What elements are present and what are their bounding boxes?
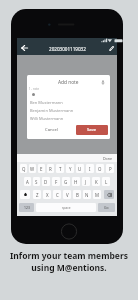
button[interactable]: J [82,177,90,186]
button[interactable]: Cancel [38,125,65,135]
staticText: space [62,206,71,210]
button[interactable]: R [47,164,54,173]
button[interactable]: Ben Mustermann [27,98,110,106]
button[interactable]: B [73,190,81,199]
staticText: E [40,166,43,172]
button[interactable]: A [24,177,31,186]
button[interactable]: Save [76,125,108,135]
button[interactable]: K [92,177,100,186]
staticText: W [30,166,35,172]
staticText: H [74,179,78,185]
button[interactable]: V [63,190,71,199]
staticText: Cancel [45,127,59,133]
staticText: S [35,179,38,185]
button[interactable]: Numbers [19,203,34,212]
button[interactable]: I [86,164,94,173]
staticText: F [55,179,58,185]
button[interactable]: M [93,190,101,199]
staticText: C [56,192,59,198]
staticText: Z [36,192,39,198]
button[interactable]: O [96,164,104,173]
staticText: Y [69,166,72,172]
button[interactable]: Benjamin Mustermann [27,106,110,114]
staticText: Q [22,166,26,172]
button[interactable]: Voice input [101,80,105,85]
button[interactable]: Z [33,190,41,199]
staticText: Benjamin Mustermann [30,108,74,113]
button[interactable]: Attach file [108,45,115,52]
button[interactable]: Willi Mustermann [27,114,110,122]
staticText: 20203001119032 [49,46,86,52]
staticText: M [95,192,99,198]
button[interactable]: L [102,177,110,186]
staticText: A [26,179,29,185]
staticText: 123 [24,205,30,210]
staticText: I [89,166,91,172]
button[interactable]: Done [103,156,113,161]
button[interactable]: F [52,177,60,186]
button[interactable]: U [76,164,84,173]
staticText: using M@entions. [31,262,107,274]
button[interactable]: P [106,164,114,173]
button[interactable]: Y [66,164,74,173]
staticText: Inform your team members [10,250,128,262]
staticText: Willi Mustermann [30,116,64,121]
staticText: G [64,179,68,185]
staticText: L [105,179,108,185]
staticText: T [59,166,62,172]
button[interactable]: C [53,190,61,199]
button[interactable]: space [36,203,96,212]
button[interactable]: Shift [20,190,30,199]
staticText: O [98,166,102,172]
button[interactable]: D [42,177,50,186]
staticText: J [85,179,87,185]
button[interactable]: S [33,177,40,186]
button[interactable]: X [43,190,51,199]
button[interactable]: H [72,177,80,186]
staticText: X [46,192,49,198]
staticText: D [44,179,48,185]
button[interactable]: G [62,177,70,186]
button[interactable]: Backspace [104,190,114,199]
staticText: Save [87,127,97,133]
staticText: V [66,192,69,198]
button[interactable]: Go [98,203,115,212]
button[interactable]: Back [21,45,28,51]
staticText: U [78,166,82,172]
button[interactable]: W [29,164,36,173]
button[interactable]: T [56,164,64,173]
staticText: B [76,192,79,198]
button[interactable]: Q [20,164,27,173]
staticText: 1 - note [29,87,39,91]
staticText: P [109,166,112,172]
button[interactable]: E [38,164,45,173]
staticText: Add note [58,79,79,86]
staticText: N [85,192,89,198]
staticText: Done [103,156,113,161]
button[interactable]: N [83,190,91,199]
staticText: Go [104,205,109,210]
staticText: R [49,166,52,172]
staticText: K [95,179,98,185]
staticText: Ben Mustermann [30,100,63,105]
